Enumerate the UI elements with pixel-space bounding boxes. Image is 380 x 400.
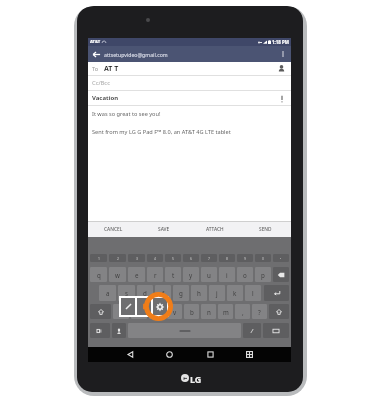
button[interactable]: Key <box>112 323 126 338</box>
button[interactable]: Choose contact <box>277 64 286 73</box>
button[interactable]: b <box>184 304 199 319</box>
button[interactable]: 2 <box>109 254 126 262</box>
button[interactable]: Vacation <box>88 91 291 105</box>
button[interactable]: 7 <box>201 254 217 262</box>
button[interactable]: 4 <box>147 254 163 262</box>
button[interactable]: 8 <box>219 254 235 262</box>
button[interactable]: Recent apps <box>202 347 218 362</box>
button[interactable]: 6 <box>183 254 199 262</box>
staticText: 1 <box>98 256 100 261</box>
staticText: v <box>173 308 177 316</box>
button[interactable]: Back <box>88 46 104 62</box>
staticText: Cc/Bcc <box>92 79 110 87</box>
button[interactable]: CANCEL <box>88 221 138 237</box>
staticText: y <box>189 271 193 279</box>
button[interactable]: m <box>218 304 233 319</box>
button[interactable]: w <box>109 267 126 282</box>
button[interactable]: f <box>155 285 171 301</box>
button[interactable]: Key <box>128 323 241 338</box>
button[interactable]: Keyboard settings <box>153 298 167 315</box>
staticText: s <box>125 289 128 297</box>
button[interactable]: Handwriting <box>121 298 135 315</box>
staticText: 9 <box>244 256 246 261</box>
button[interactable]: i <box>219 267 235 282</box>
staticText: It was so great to see you! <box>92 110 161 118</box>
button[interactable]: u <box>201 267 217 282</box>
button[interactable]: e <box>128 267 145 282</box>
button[interactable]: Key <box>263 323 289 338</box>
staticText: ATTACH <box>206 226 224 233</box>
staticText: j <box>216 289 218 297</box>
button[interactable]: Key <box>264 285 289 301</box>
staticText: b <box>190 308 194 316</box>
button[interactable]: SAVE <box>138 221 189 237</box>
button[interactable]: h <box>191 285 207 301</box>
button[interactable]: n <box>201 304 216 319</box>
staticText: m <box>223 308 229 316</box>
button[interactable]: p <box>255 267 271 282</box>
button[interactable]: Key <box>243 323 261 338</box>
button[interactable]: Dual window <box>241 347 257 362</box>
button[interactable]: 1 <box>90 254 107 262</box>
button[interactable]: 3 <box>128 254 145 262</box>
staticText: SEND <box>259 226 272 233</box>
button[interactable]: Cc/Bcc <box>88 76 291 90</box>
staticText: c <box>156 308 159 316</box>
staticText: l <box>252 289 254 297</box>
staticText: w <box>115 271 120 279</box>
button[interactable]: SEND <box>240 221 291 237</box>
button[interactable]: k <box>227 285 243 301</box>
button[interactable]: x <box>131 304 147 319</box>
button[interactable]: Key <box>269 304 289 319</box>
staticText: To <box>92 65 99 72</box>
button[interactable]: d <box>137 285 153 301</box>
staticText: d <box>143 289 147 297</box>
staticText: r <box>154 271 157 279</box>
staticText: g <box>179 289 183 297</box>
staticText: 3 <box>136 256 138 261</box>
staticText: 8 <box>226 256 228 261</box>
button[interactable]: 9 <box>237 254 253 262</box>
button[interactable]: j <box>209 285 225 301</box>
button[interactable]: Key <box>90 323 110 338</box>
button[interactable]: c <box>149 304 165 319</box>
staticText: z <box>120 308 123 316</box>
button[interactable]: Key <box>90 304 111 319</box>
button[interactable]: t <box>165 267 181 282</box>
button[interactable]: y <box>183 267 199 282</box>
staticText: n <box>207 308 211 316</box>
button[interactable]: a <box>99 285 116 301</box>
button[interactable]: q <box>90 267 107 282</box>
button[interactable]: Back <box>122 347 138 362</box>
staticText: u <box>207 271 211 279</box>
staticText: LG <box>190 373 202 383</box>
button[interactable]: s <box>118 285 135 301</box>
staticText: , <box>242 308 244 316</box>
staticText: Vacation <box>92 94 119 102</box>
button[interactable]: Key <box>273 267 289 282</box>
button[interactable]: ? <box>252 304 267 319</box>
button[interactable]: l <box>245 285 261 301</box>
button[interactable]: • <box>273 254 289 262</box>
staticText: p <box>261 271 265 279</box>
staticText: x <box>137 308 141 316</box>
button[interactable]: r <box>147 267 163 282</box>
button[interactable]: z <box>113 304 129 319</box>
staticText: CANCEL <box>104 226 123 233</box>
button[interactable]: Home <box>161 347 177 362</box>
staticText: AT T <box>104 64 119 74</box>
button[interactable]: More options <box>275 46 291 62</box>
button[interactable]: g <box>173 285 189 301</box>
button[interactable]: 5 <box>165 254 181 262</box>
staticText: 4 <box>154 256 156 261</box>
staticText: h <box>197 289 201 297</box>
button[interactable]: To <box>88 62 291 75</box>
button[interactable]: 0 <box>255 254 271 262</box>
button[interactable]: v <box>167 304 182 319</box>
staticText: f <box>162 289 165 297</box>
button[interactable]: o <box>237 267 253 282</box>
button[interactable]: Clipboard <box>137 298 151 315</box>
button[interactable]: Priority <box>277 94 286 103</box>
button[interactable]: ATTACH <box>189 221 240 237</box>
